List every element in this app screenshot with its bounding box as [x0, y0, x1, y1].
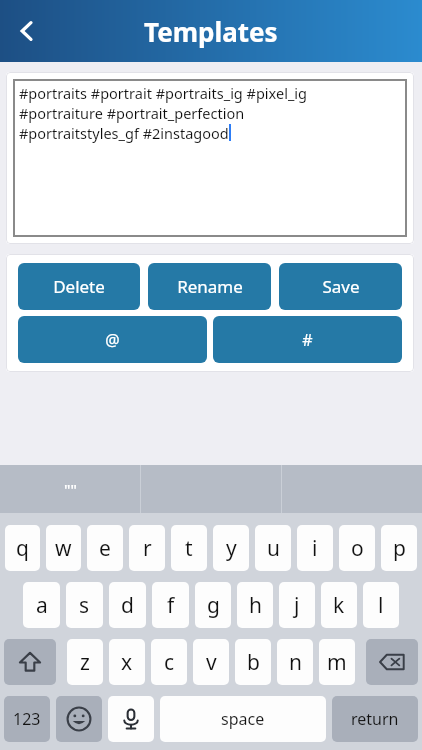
button[interactable]: Back	[4, 8, 50, 54]
button[interactable]: r	[129, 525, 165, 571]
button[interactable]: return	[332, 696, 418, 742]
staticText: w	[55, 534, 72, 563]
button[interactable]: y	[213, 525, 249, 571]
staticText: j	[294, 591, 300, 620]
staticText: c	[164, 648, 175, 677]
button[interactable]: c	[151, 639, 187, 685]
staticText: f	[167, 591, 175, 620]
staticText: Delete	[53, 275, 105, 298]
button[interactable]: Backspace	[366, 639, 418, 685]
staticText: x	[121, 648, 133, 677]
button[interactable]: x	[109, 639, 145, 685]
button[interactable]: Dictation	[108, 696, 154, 742]
staticText: #portraitstyles_gf #2instagood	[19, 123, 229, 143]
staticText: 123	[13, 708, 41, 730]
button[interactable]: b	[235, 639, 271, 685]
staticText: b	[247, 648, 260, 677]
button[interactable]: 123	[4, 696, 50, 742]
button[interactable]: Delete	[18, 263, 140, 310]
staticText: space	[221, 708, 265, 730]
staticText: t	[185, 534, 193, 563]
button[interactable]: a	[23, 582, 60, 628]
staticText: e	[99, 534, 111, 563]
button[interactable]: ""	[0, 465, 140, 513]
staticText: @	[105, 329, 120, 351]
button[interactable]: d	[109, 582, 146, 628]
button[interactable]: @	[18, 316, 207, 363]
button[interactable]: k	[321, 582, 357, 628]
button[interactable]: o	[339, 525, 375, 571]
button[interactable]: w	[46, 525, 81, 571]
staticText: ""	[64, 479, 77, 499]
button[interactable]: h	[237, 582, 273, 628]
staticText: d	[121, 591, 134, 620]
staticText: Templates	[144, 14, 278, 49]
staticText: u	[267, 534, 280, 563]
button[interactable]: m	[319, 639, 355, 685]
button[interactable]: j	[279, 582, 315, 628]
staticText: z	[80, 648, 90, 677]
staticText: h	[249, 591, 262, 620]
button[interactable]: q	[5, 525, 40, 571]
staticText: k	[333, 591, 345, 620]
button[interactable]: n	[277, 639, 313, 685]
staticText: m	[327, 648, 347, 677]
button[interactable]: #portraits #portrait #portraits_ig #pixe…	[13, 79, 407, 237]
staticText: r	[143, 534, 152, 563]
button[interactable]: z	[67, 639, 103, 685]
staticText: g	[207, 591, 220, 620]
button[interactable]: v	[193, 639, 229, 685]
button[interactable]: u	[255, 525, 291, 571]
staticText: i	[312, 534, 318, 563]
staticText: Rename	[177, 275, 243, 298]
button[interactable]: p	[381, 525, 417, 571]
staticText: return	[351, 708, 399, 730]
staticText: v	[206, 648, 217, 677]
staticText: l	[378, 591, 384, 620]
staticText: o	[351, 534, 364, 563]
button[interactable]: t	[171, 525, 207, 571]
button[interactable]: f	[152, 582, 189, 628]
staticText: #	[302, 329, 313, 351]
button[interactable]: Emoji	[56, 696, 102, 742]
staticText: #portraits #portrait #portraits_ig #pixe…	[19, 83, 307, 103]
button[interactable]: g	[195, 582, 231, 628]
button[interactable]: s	[66, 582, 103, 628]
button[interactable]: l	[363, 582, 399, 628]
staticText: q	[16, 534, 29, 563]
staticText: Save	[322, 275, 360, 298]
staticText: #portraiture #portrait_perfection	[19, 103, 245, 123]
button[interactable]: Rename	[148, 263, 271, 310]
button[interactable]: Save	[279, 263, 402, 310]
staticText: a	[36, 591, 48, 620]
button[interactable]: e	[87, 525, 123, 571]
button[interactable]: space	[160, 696, 326, 742]
staticText: p	[393, 534, 406, 563]
staticText: s	[79, 591, 90, 620]
button[interactable]: Shift	[4, 639, 56, 685]
staticText: n	[289, 648, 302, 677]
button[interactable]: i	[297, 525, 333, 571]
button[interactable]: #	[213, 316, 402, 363]
staticText: y	[226, 534, 237, 563]
